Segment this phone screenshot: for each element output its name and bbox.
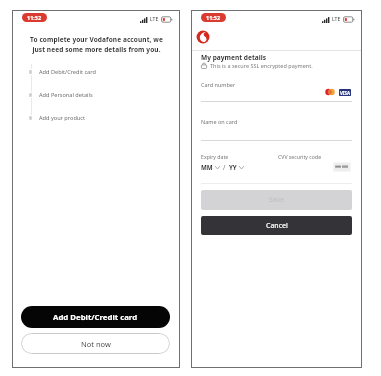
staticText: / [223,163,226,171]
staticText: Not now [81,339,111,349]
staticText: Save [269,195,285,205]
staticText: Add Debit/Credit card [39,68,96,76]
staticText: MM [201,163,213,171]
other: Vodafone [196,30,210,44]
staticText: Cancel [266,221,288,231]
button[interactable]: Add Debit/Credit card [21,306,170,328]
staticText: YY [229,163,237,171]
staticText: VISA [340,90,351,96]
staticText: Add your product [39,114,85,122]
staticText: Name on card [201,118,238,125]
staticText: 11:52 [206,14,221,21]
staticText: Card number [201,81,236,88]
staticText: Add Debit/Credit card [53,312,138,323]
staticText: LTE [150,16,159,23]
staticText: To complete your Vodafone account, we ju… [28,35,165,54]
staticText: 11:52 [27,14,42,21]
staticText: This is a secure SSL encrypted payment. [210,62,313,69]
staticText: Expiry date [201,153,229,160]
button[interactable]: Add Personal details [26,90,93,100]
staticText: CVV security code [278,153,322,160]
staticText: Add Personal details [39,91,93,99]
staticText: LTE [332,16,341,23]
button[interactable]: Add your product [26,113,85,123]
staticText: My payment details [201,53,266,62]
button[interactable]: MM [201,163,244,171]
button[interactable]: Add Debit/Credit card [26,67,96,77]
button[interactable]: Not now [21,333,170,354]
button[interactable]: Cancel [201,216,352,235]
